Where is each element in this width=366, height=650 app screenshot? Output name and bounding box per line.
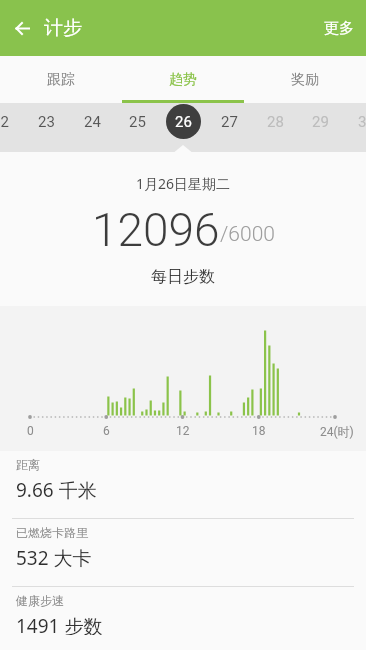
staticText: 趋势	[169, 71, 197, 89]
staticText: 健康步速	[16, 593, 64, 608]
staticText: 距离	[16, 457, 40, 472]
staticText: /6000	[220, 222, 275, 247]
button[interactable]: 距离	[0, 451, 366, 518]
button[interactable]: 25	[115, 103, 159, 140]
staticText: 奖励	[291, 71, 319, 89]
button[interactable]: 28	[253, 103, 297, 140]
staticText: 24	[84, 113, 101, 131]
staticText: 12	[176, 424, 190, 438]
staticText: 29	[312, 113, 329, 131]
staticText: 28	[267, 113, 284, 131]
staticText: 23	[38, 113, 55, 131]
button[interactable]: 健康步速	[0, 587, 366, 650]
staticText: 30	[358, 113, 366, 131]
staticText: 更多	[324, 19, 354, 38]
button[interactable]: 24	[70, 103, 114, 140]
button[interactable]: 27	[207, 103, 251, 140]
staticText: 计步	[44, 16, 82, 40]
staticText: 27	[221, 113, 238, 131]
button[interactable]: 23	[24, 103, 68, 140]
staticText: 1月26日星期二	[136, 174, 231, 193]
button[interactable]: 奖励	[244, 56, 366, 103]
staticText: 24(时)	[320, 424, 354, 439]
button[interactable]: 29	[298, 103, 342, 140]
staticText: 6	[103, 424, 110, 438]
staticText: 已燃烧卡路里	[16, 525, 88, 540]
button[interactable]	[0, 0, 44, 56]
button[interactable]: 跟踪	[0, 56, 122, 103]
button[interactable]: 趋势	[122, 56, 244, 103]
staticText: 每日步数	[151, 267, 215, 287]
staticText: 12096	[92, 203, 220, 257]
staticText: 跟踪	[47, 71, 75, 89]
staticText: 25	[129, 113, 146, 131]
button[interactable]: 更多	[312, 3, 366, 54]
button[interactable]: 22	[0, 103, 22, 140]
button[interactable]: 已燃烧卡路里	[0, 519, 366, 586]
staticText: 18	[252, 424, 266, 438]
staticText: 532 大卡	[16, 545, 92, 571]
button[interactable]: 30	[344, 103, 366, 140]
staticText: 0	[27, 424, 34, 438]
button[interactable]: 26	[161, 103, 205, 140]
staticText: 9.66 千米	[16, 477, 97, 503]
staticText: 1491 步数	[16, 613, 103, 635]
staticText: 22	[0, 113, 9, 131]
staticText: 26	[175, 113, 192, 131]
